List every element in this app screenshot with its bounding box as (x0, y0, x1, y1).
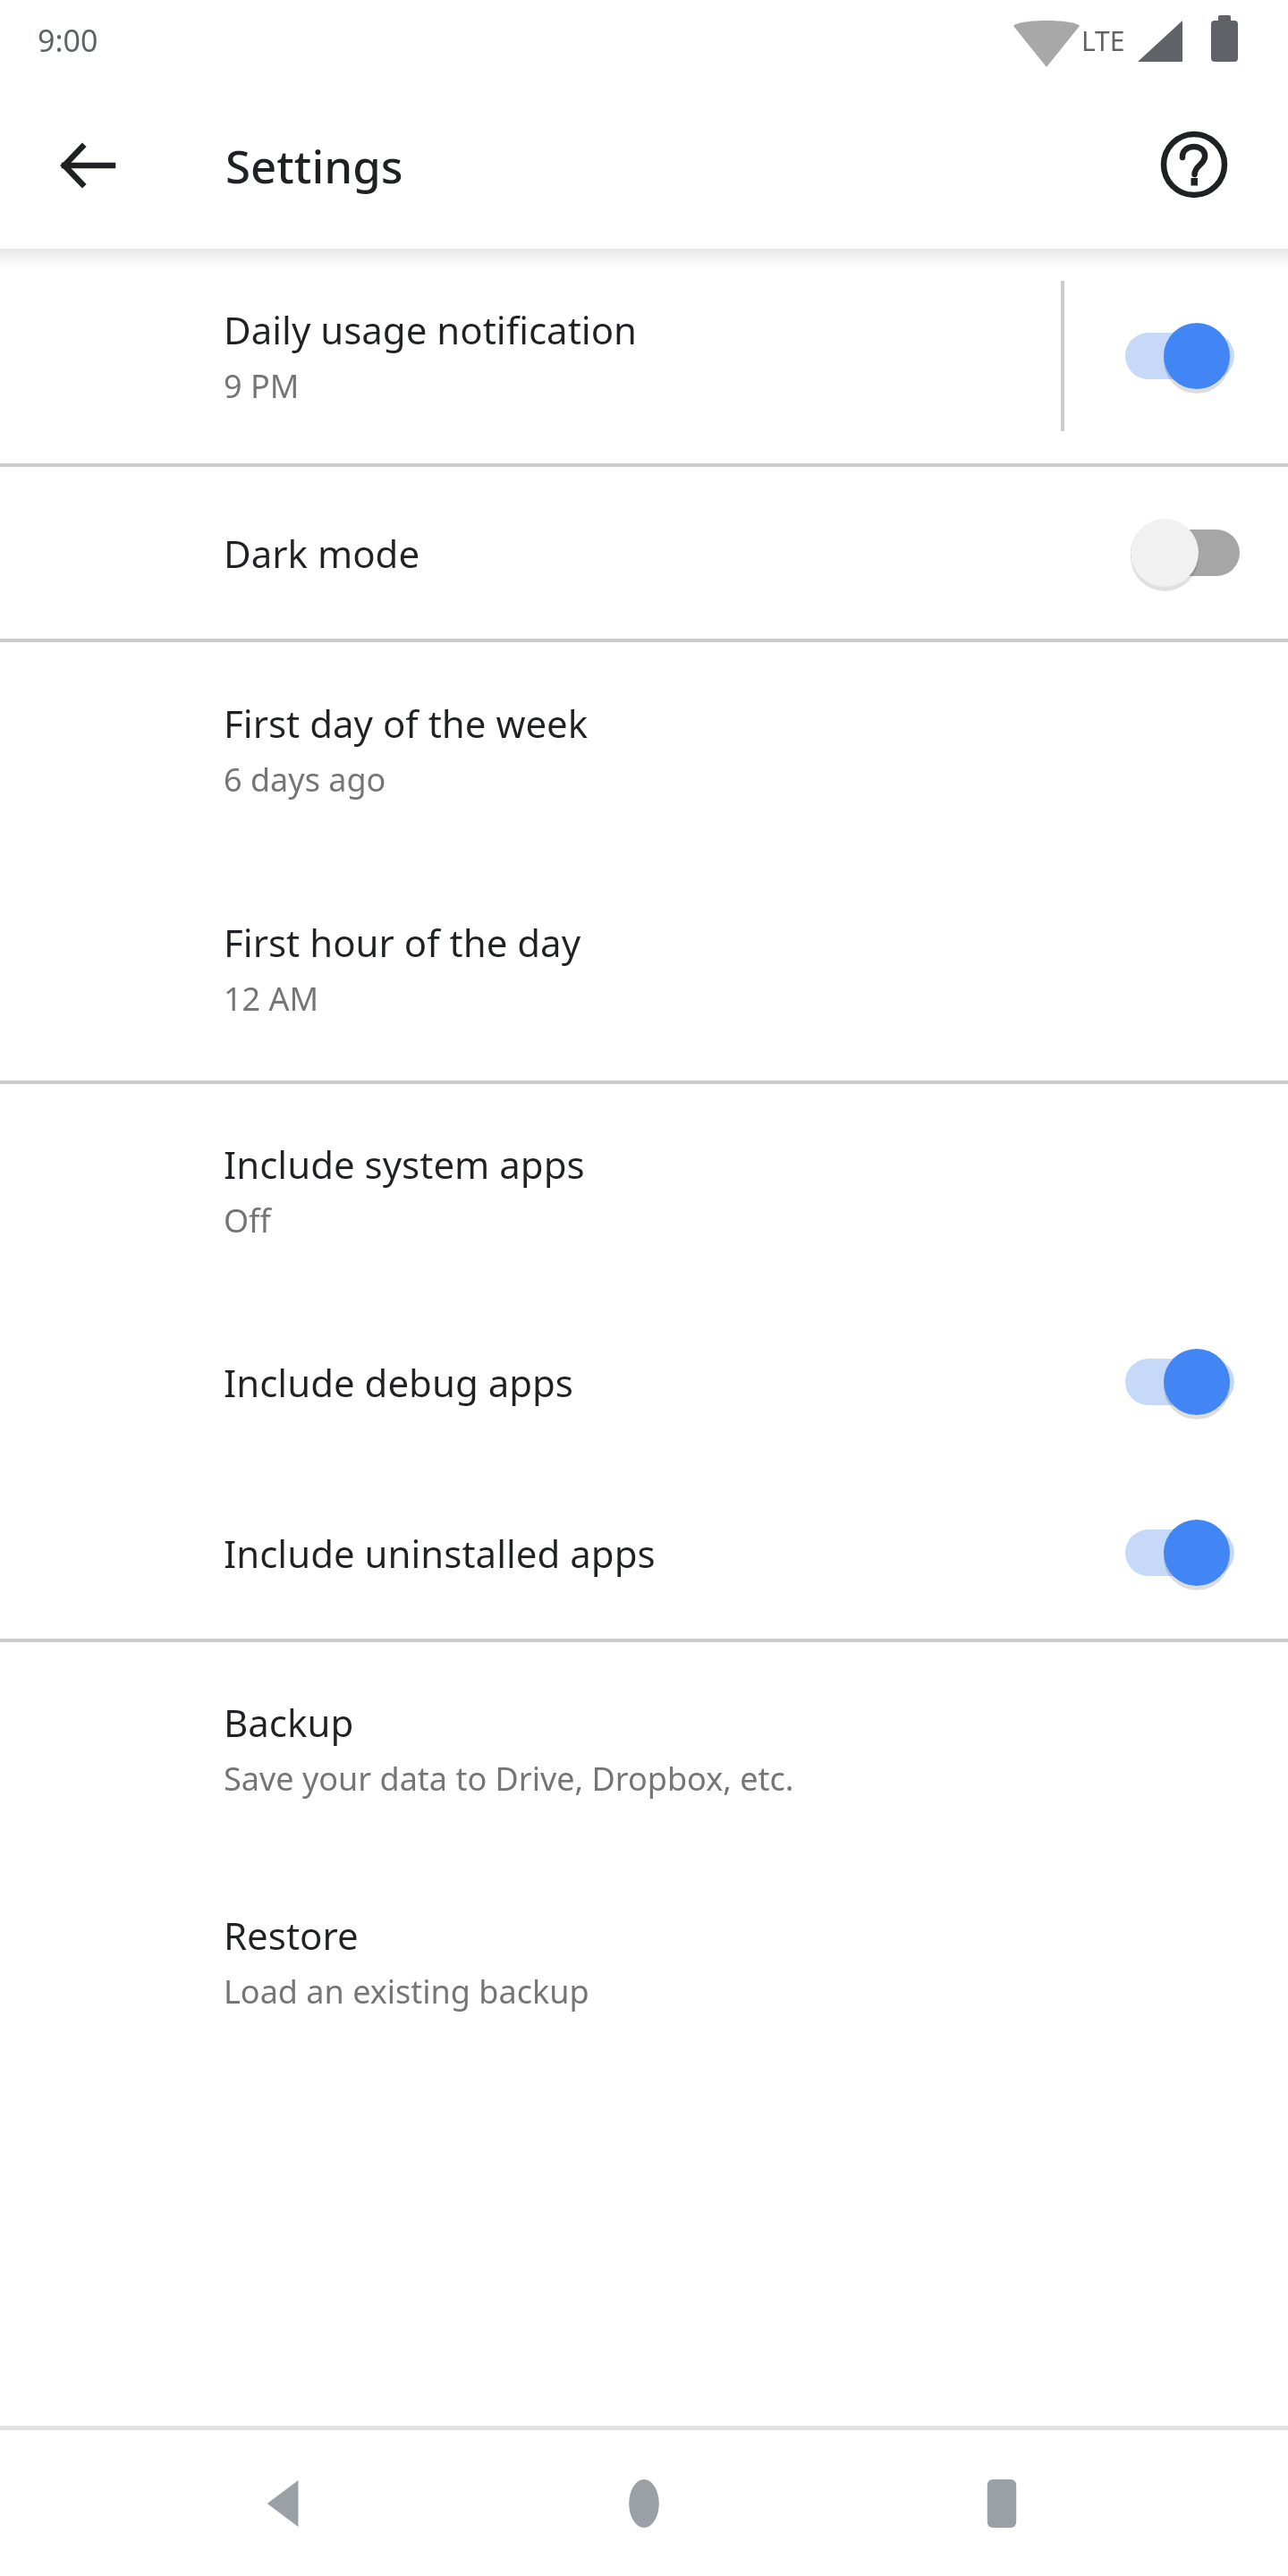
staticText: Settings (225, 134, 403, 196)
staticText: Off (224, 1199, 271, 1242)
staticText: Dark mode (224, 528, 420, 579)
staticText: 9 PM (224, 364, 300, 408)
button[interactable]: Help (1140, 111, 1248, 218)
staticText: First day of the week (224, 698, 589, 749)
staticText: Backup (224, 1697, 354, 1748)
button[interactable]: Toggle on (1097, 1333, 1258, 1431)
staticText: LTE (1081, 22, 1125, 59)
button[interactable]: Back (27, 105, 148, 225)
button[interactable]: Toggle on (1097, 1504, 1258, 1602)
staticText: 6 days ago (224, 758, 386, 801)
staticText: Restore (224, 1910, 359, 1961)
staticText: First hour of the day (224, 917, 581, 968)
button[interactable]: Toggle off (1097, 504, 1258, 602)
button[interactable]: Toggle on (1097, 307, 1258, 405)
button[interactable]: First hour of the day (0, 857, 1288, 1080)
button[interactable]: Daily usage notification (0, 249, 1288, 463)
staticText: Save your data to Drive, Dropbox, etc. (224, 1757, 794, 1801)
staticText: Include system apps (224, 1139, 585, 1190)
button[interactable]: Backup (0, 1642, 1288, 1855)
button[interactable]: Restore (0, 1855, 1288, 2068)
staticText: Load an existing backup (224, 1970, 589, 2013)
button[interactable]: Include system apps (0, 1084, 1288, 1297)
button[interactable]: Dark mode (0, 467, 1288, 639)
button[interactable]: Back (224, 2441, 349, 2566)
staticText: Include debug apps (224, 1357, 573, 1408)
button[interactable]: Include uninstalled apps (0, 1467, 1288, 1639)
staticText: 12 AM (224, 977, 319, 1021)
staticText: Include uninstalled apps (224, 1528, 656, 1579)
button[interactable]: First day of the week (0, 642, 1288, 857)
staticText: Daily usage notification (224, 304, 638, 355)
staticText: 9:00 (38, 20, 98, 61)
button[interactable]: Include debug apps (0, 1297, 1288, 1467)
button[interactable]: Recent apps (939, 2441, 1064, 2566)
button[interactable]: Home (581, 2441, 707, 2566)
